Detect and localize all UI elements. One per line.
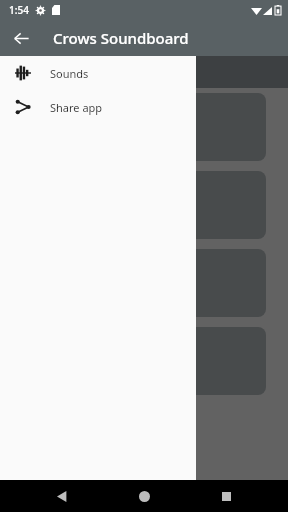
button[interactable]: Home	[130, 482, 158, 510]
staticText: Crows Soundboard	[53, 28, 189, 48]
button[interactable]: Back	[48, 482, 76, 510]
button[interactable]: 2	[12, 93, 266, 161]
button[interactable]: Back	[5, 22, 37, 54]
staticText: Sounds	[50, 66, 89, 81]
staticText: Share app	[50, 100, 103, 115]
button[interactable]: 4	[12, 171, 266, 239]
button[interactable]: 8	[12, 327, 266, 395]
button[interactable]: Share app	[0, 90, 196, 124]
staticText: 1:54	[9, 3, 29, 17]
button[interactable]: 6	[12, 249, 266, 317]
button[interactable]: Recent apps	[212, 482, 240, 510]
button[interactable]: Sounds	[0, 56, 196, 90]
